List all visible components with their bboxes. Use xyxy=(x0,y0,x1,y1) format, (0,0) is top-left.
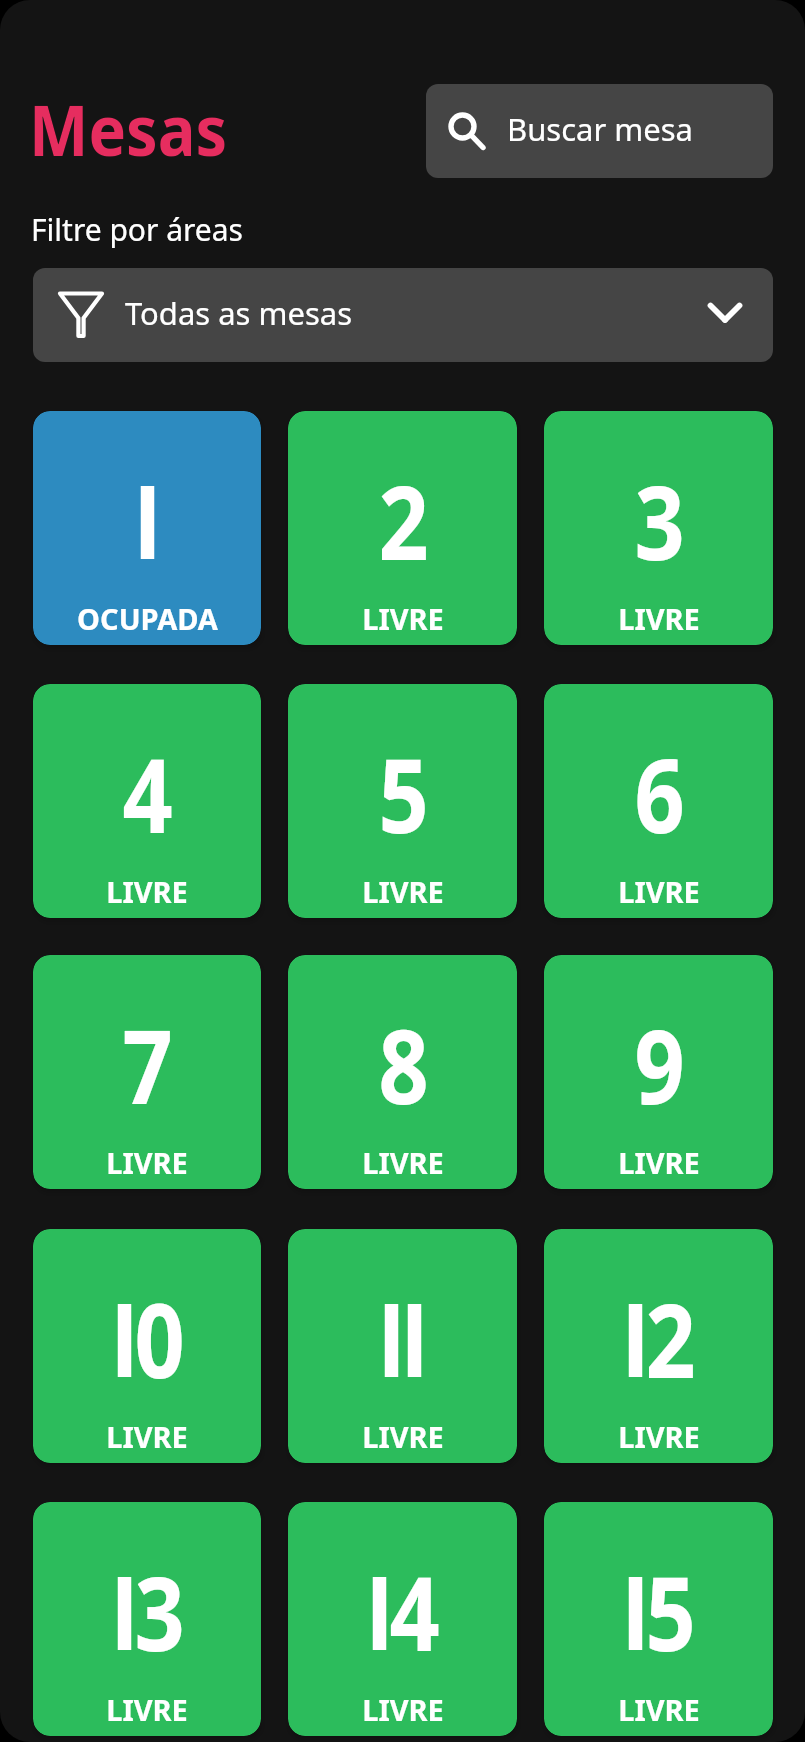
button[interactable]: OCUPADA xyxy=(33,411,261,645)
button[interactable]: 0 xyxy=(33,1229,261,1463)
staticText: LIVRE xyxy=(362,1143,444,1182)
staticText: LIVRE xyxy=(618,1143,700,1182)
button[interactable]: 4 xyxy=(288,1502,517,1736)
other: Expandir xyxy=(707,297,743,333)
staticText: 2 xyxy=(378,451,429,590)
button[interactable]: 2 xyxy=(544,1229,773,1463)
staticText: LIVRE xyxy=(106,1690,188,1729)
staticText: 8 xyxy=(378,995,429,1134)
staticText: LIVRE xyxy=(618,599,700,638)
staticText: Mesas xyxy=(29,81,228,175)
staticText: LIVRE xyxy=(362,872,444,911)
staticText: 4 xyxy=(389,1542,440,1681)
staticText: 2 xyxy=(645,1269,696,1408)
button[interactable]: 5 xyxy=(544,1502,773,1736)
button[interactable]: 6 xyxy=(544,684,773,918)
staticText: LIVRE xyxy=(106,1143,188,1182)
staticText: Buscar mesa xyxy=(507,108,693,150)
button[interactable]: Buscar mesa xyxy=(426,84,773,178)
staticText: Filtre por áreas xyxy=(31,209,243,250)
staticText: 5 xyxy=(378,724,429,863)
staticText: 3 xyxy=(634,451,685,590)
button[interactable]: 5 xyxy=(288,684,517,918)
staticText: 9 xyxy=(634,995,685,1134)
button[interactable]: 9 xyxy=(544,955,773,1189)
button[interactable]: 3 xyxy=(33,1502,261,1736)
staticText: 7 xyxy=(122,995,173,1134)
staticText: 6 xyxy=(634,724,685,863)
button[interactable]: 3 xyxy=(544,411,773,645)
staticText: LIVRE xyxy=(362,1690,444,1729)
staticText: LIVRE xyxy=(106,1417,188,1456)
staticText: OCUPADA xyxy=(77,599,218,638)
staticText: LIVRE xyxy=(618,872,700,911)
staticText: LIVRE xyxy=(106,872,188,911)
button[interactable]: 2 xyxy=(288,411,517,645)
staticText: LIVRE xyxy=(362,1417,444,1456)
other: Filtrar por área xyxy=(58,292,104,338)
staticText: Todas as mesas xyxy=(125,292,353,334)
button[interactable]: 7 xyxy=(33,955,261,1189)
staticText: 4 xyxy=(122,724,173,863)
staticText: 0 xyxy=(134,1269,185,1408)
button[interactable]: 4 xyxy=(33,684,261,918)
button[interactable]: LIVRE xyxy=(288,1229,517,1463)
staticText: 3 xyxy=(134,1542,185,1681)
other: Buscar mesa xyxy=(448,112,486,150)
button[interactable]: Filtrar por área xyxy=(33,268,773,362)
button[interactable]: 8 xyxy=(288,955,517,1189)
staticText: LIVRE xyxy=(618,1417,700,1456)
staticText: LIVRE xyxy=(362,599,444,638)
staticText: LIVRE xyxy=(618,1690,700,1729)
staticText: 5 xyxy=(645,1542,696,1681)
